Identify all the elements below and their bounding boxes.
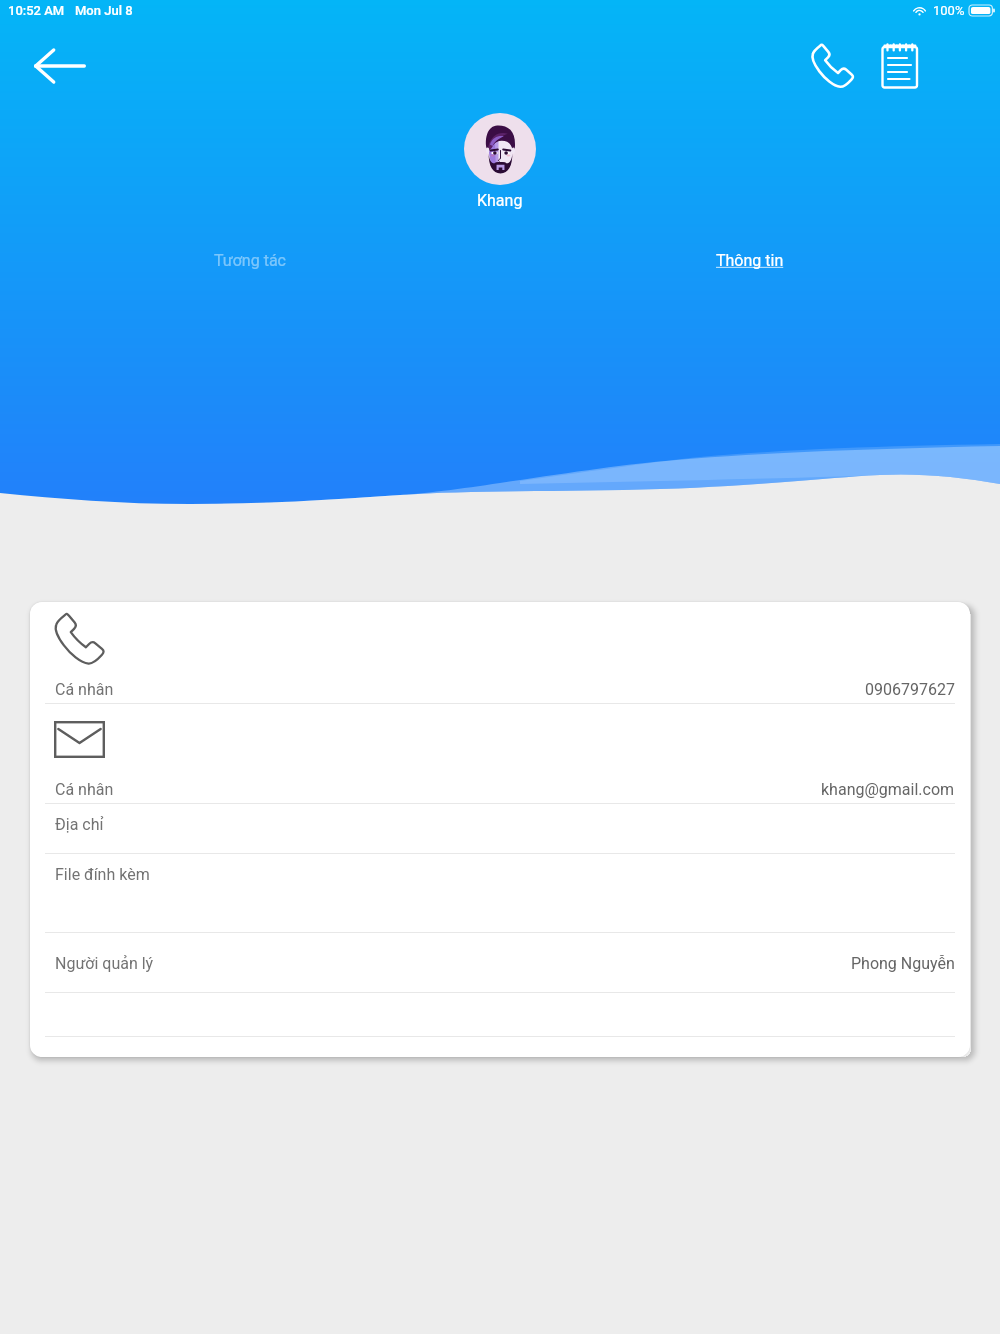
button[interactable]: Cá nhân bbox=[30, 704, 970, 803]
staticText: Địa chỉ bbox=[55, 815, 104, 834]
staticText: Người quản lý bbox=[55, 954, 154, 973]
staticText: Mon Jul 8 bbox=[75, 3, 133, 18]
staticText: Khang bbox=[477, 191, 523, 210]
button[interactable]: Back bbox=[24, 42, 96, 90]
staticText: 0906797627 bbox=[865, 680, 955, 699]
button[interactable]: Notes bbox=[868, 34, 932, 98]
button[interactable]: Tương tác bbox=[190, 241, 310, 280]
button[interactable]: Thông tin bbox=[692, 241, 808, 280]
staticText: 100% bbox=[933, 3, 965, 18]
button[interactable]: Địa chỉ bbox=[30, 804, 970, 853]
staticText: Thông tin bbox=[716, 251, 784, 270]
staticText: Cá nhân bbox=[55, 780, 114, 799]
staticText: Phong Nguyễn bbox=[851, 954, 955, 973]
button[interactable]: Call bbox=[801, 34, 865, 98]
staticText: File đính kèm bbox=[55, 865, 150, 884]
staticText: 10:52 AM bbox=[8, 3, 65, 18]
button[interactable]: Người quản lý bbox=[30, 933, 970, 992]
staticText: Cá nhân bbox=[55, 680, 114, 699]
staticText: khang@gmail.com bbox=[821, 780, 955, 799]
button[interactable]: Cá nhân bbox=[30, 602, 970, 703]
staticText: Tương tác bbox=[214, 251, 286, 270]
button[interactable]: File đính kèm bbox=[30, 854, 970, 932]
